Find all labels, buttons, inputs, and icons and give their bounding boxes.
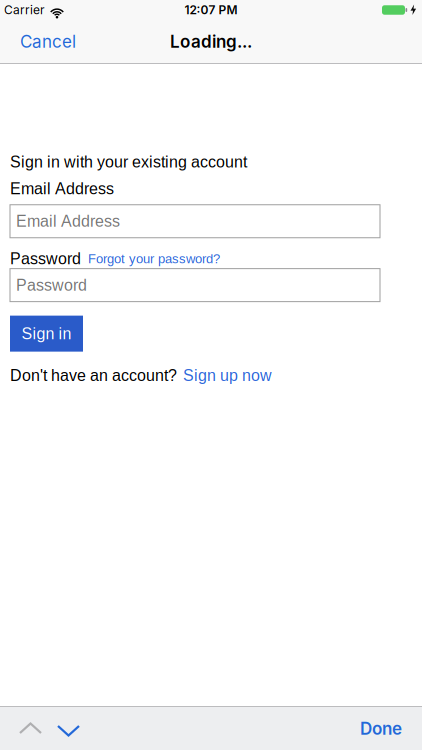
staticText: Password bbox=[10, 250, 81, 268]
staticText: Sign up now bbox=[183, 367, 272, 384]
button[interactable]: Email Address bbox=[10, 205, 380, 238]
staticText: Forgot your password? bbox=[88, 251, 220, 266]
staticText: Done bbox=[360, 718, 402, 739]
button[interactable]: Sign up now bbox=[183, 367, 272, 384]
staticText: Sign in with your existing account bbox=[10, 153, 247, 171]
staticText: Email Address bbox=[10, 180, 114, 198]
staticText: Loading... bbox=[170, 31, 252, 52]
button[interactable]: Forgot your password? bbox=[88, 251, 220, 266]
button[interactable]: Done bbox=[360, 708, 422, 749]
staticText: Email Address bbox=[16, 212, 120, 230]
staticText: 12:07 PM bbox=[184, 3, 237, 17]
staticText: Password bbox=[16, 276, 87, 294]
button[interactable]: Cancel bbox=[0, 21, 76, 62]
staticText: Sign in bbox=[21, 325, 71, 343]
button[interactable]: Sign in bbox=[10, 316, 83, 352]
staticText: Carrier bbox=[4, 3, 45, 17]
staticText: Don't have an account? bbox=[10, 367, 177, 384]
button[interactable]: Next field bbox=[41, 707, 79, 750]
button[interactable]: Previous field bbox=[0, 707, 41, 750]
button[interactable]: Password bbox=[10, 269, 380, 302]
staticText: Cancel bbox=[20, 31, 76, 52]
